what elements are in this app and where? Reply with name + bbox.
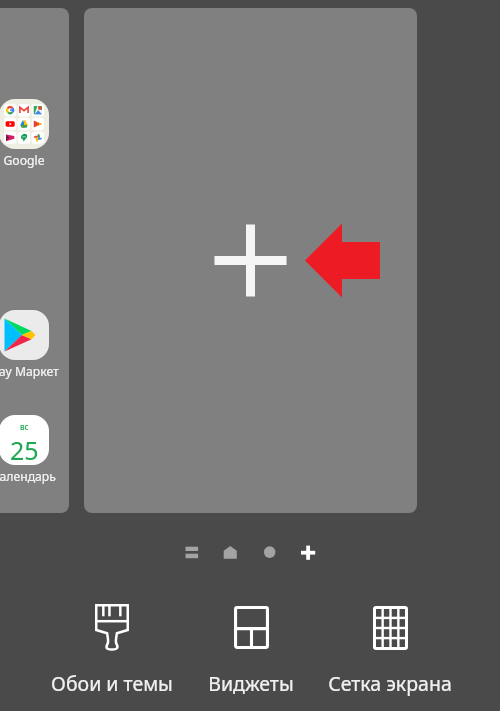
button[interactable]: Виджеты (181, 585, 320, 705)
staticText: Play Маркет (0, 363, 59, 380)
staticText: 25 (10, 433, 39, 465)
staticText: Виджеты (208, 670, 294, 697)
button[interactable]: Home screen (217, 539, 244, 566)
staticText: Календарь (0, 468, 56, 485)
button[interactable]: Google Discover (178, 539, 205, 566)
button[interactable] (84, 8, 417, 513)
button[interactable]: Обои и темы (42, 585, 181, 705)
staticText: Google (3, 152, 45, 169)
staticText: Сетка экрана (328, 670, 452, 697)
button[interactable]: Google (0, 91, 65, 187)
staticText: Обои и темы (51, 670, 173, 697)
button[interactable]: Сетка экрана (320, 585, 459, 705)
button[interactable]: Page 2 (256, 539, 283, 566)
button[interactable]: Add page (295, 539, 322, 566)
button[interactable]: Google (0, 8, 69, 513)
button[interactable]: Play Маркет (0, 302, 65, 398)
button[interactable]: вс (0, 407, 65, 503)
staticText: вс (20, 421, 29, 432)
